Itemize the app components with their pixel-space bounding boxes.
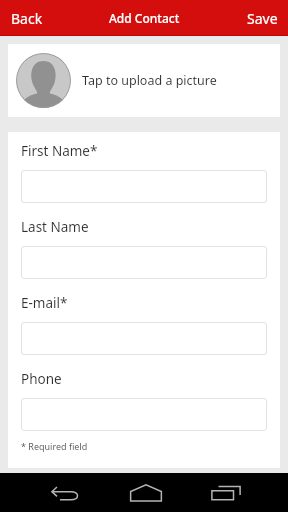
staticText: E-mail* xyxy=(21,294,68,312)
button[interactable] xyxy=(21,170,267,203)
staticText: * Required field xyxy=(21,440,88,452)
staticText: Save xyxy=(247,9,278,27)
button[interactable]: Save xyxy=(236,0,288,36)
staticText: Tap to upload a picture xyxy=(82,72,217,89)
button[interactable]: Home xyxy=(122,473,170,512)
button[interactable] xyxy=(21,398,267,431)
staticText: Phone xyxy=(21,370,62,388)
button[interactable]: Back xyxy=(0,0,54,36)
button[interactable]: Recent apps xyxy=(202,473,250,512)
button[interactable] xyxy=(21,246,267,279)
staticText: Back xyxy=(11,9,43,27)
button[interactable]: Back xyxy=(42,473,90,512)
button[interactable]: Tap to upload a picture xyxy=(8,44,280,117)
button[interactable] xyxy=(21,322,267,355)
staticText: First Name* xyxy=(21,142,98,160)
staticText: Add Contact xyxy=(109,10,180,26)
staticText: Last Name xyxy=(21,218,89,236)
